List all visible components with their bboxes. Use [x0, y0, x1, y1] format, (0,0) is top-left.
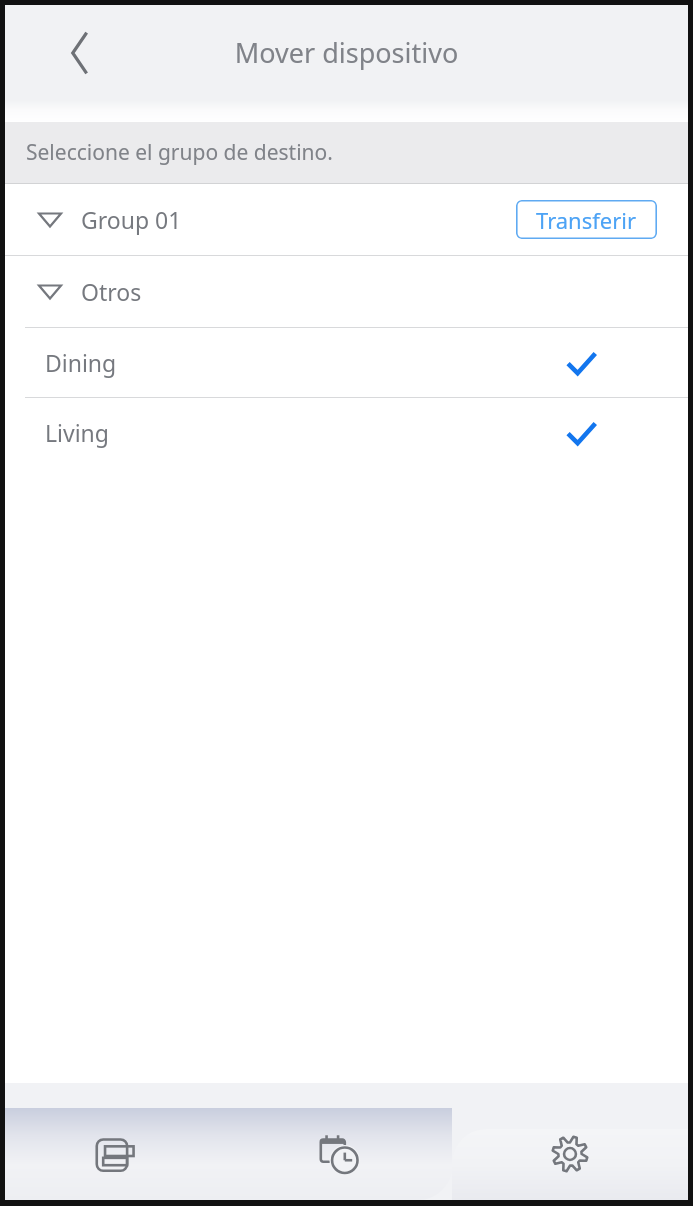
button[interactable]: Group 01	[5, 184, 688, 255]
button[interactable]: Transferir	[516, 200, 657, 239]
button[interactable]: Otros	[5, 256, 688, 327]
staticText: Mover dispositivo	[5, 34, 688, 71]
button[interactable]: Back	[49, 26, 103, 80]
staticText: Living	[45, 417, 109, 448]
button[interactable]: Living	[5, 398, 688, 467]
button[interactable]: Schedule	[228, 1108, 452, 1200]
button[interactable]: Settings	[452, 1108, 688, 1200]
staticText: Seleccione el grupo de destino.	[26, 138, 333, 167]
staticText: Transferir	[536, 205, 637, 235]
button[interactable]: Devices	[5, 1108, 228, 1200]
staticText: Group 01	[81, 204, 182, 235]
other: Selected	[564, 416, 598, 450]
button[interactable]: Dining	[5, 328, 688, 397]
other: Selected	[564, 346, 598, 380]
staticText: Otros	[81, 276, 142, 307]
staticText: Dining	[45, 347, 117, 378]
